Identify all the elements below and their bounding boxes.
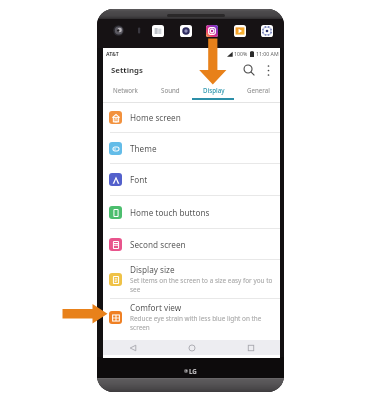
button[interactable]: Search <box>239 60 259 80</box>
button[interactable]: Sound <box>148 81 192 98</box>
button[interactable]: Home <box>162 340 221 355</box>
staticText: Sound <box>161 86 180 94</box>
button[interactable]: Home touch buttons <box>103 196 280 228</box>
button[interactable]: Second screen <box>103 229 280 259</box>
button[interactable]: App icon 5 <box>261 25 273 37</box>
staticText: Set items on the screen to a size easy f… <box>130 276 274 294</box>
button[interactable]: Network <box>103 81 148 98</box>
button[interactable]: App icon 3 <box>206 25 218 37</box>
button[interactable]: Comfort view <box>103 299 280 335</box>
staticText: LG <box>189 367 197 375</box>
staticText: AT&T <box>106 50 119 57</box>
staticText: Home screen <box>130 112 181 123</box>
staticText: General <box>247 86 270 94</box>
staticText: Theme <box>130 143 157 154</box>
staticText: Home touch buttons <box>130 207 210 218</box>
staticText: Reduce eye strain with less blue light o… <box>130 314 274 332</box>
button[interactable]: Font <box>103 164 280 195</box>
staticText: Second screen <box>130 239 186 250</box>
button[interactable]: More options <box>260 62 276 78</box>
button[interactable]: Theme <box>103 133 280 163</box>
staticText: Font <box>130 174 148 185</box>
staticText: 11:00 AM <box>256 50 279 57</box>
button[interactable]: Back <box>103 340 162 355</box>
button[interactable]: Display size <box>103 260 280 298</box>
button[interactable]: General <box>236 81 280 98</box>
button[interactable]: App icon 4 <box>234 25 246 37</box>
staticText: Display <box>203 86 225 94</box>
button[interactable]: Display <box>192 81 236 98</box>
button[interactable]: Recent apps <box>221 340 280 355</box>
staticText: Comfort view <box>130 302 182 313</box>
staticText: 100% <box>234 50 248 57</box>
staticText: Network <box>113 86 138 94</box>
button[interactable]: App icon 2 <box>180 25 192 37</box>
button[interactable]: Home screen <box>103 103 280 132</box>
staticText: Display size <box>130 264 175 275</box>
staticText: Settings <box>111 65 143 76</box>
button[interactable]: App icon 1 <box>152 25 164 37</box>
